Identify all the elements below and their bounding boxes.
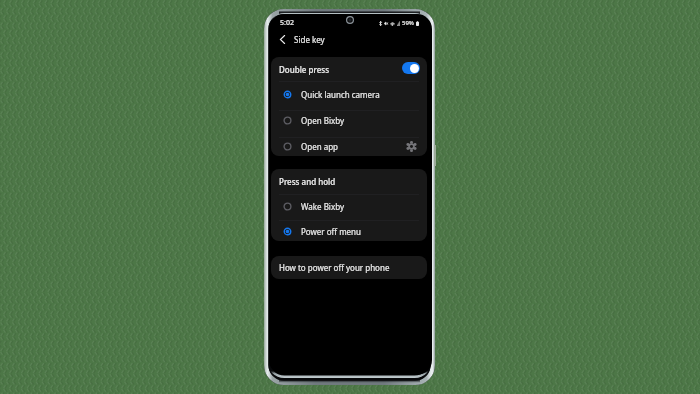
staticText: Press and hold bbox=[279, 176, 336, 187]
button[interactable]: Open Bixby bbox=[271, 107, 427, 133]
button[interactable]: Open app settings bbox=[404, 139, 418, 153]
button[interactable]: Double press bbox=[279, 64, 330, 75]
button[interactable]: Open app bbox=[271, 133, 427, 156]
button[interactable]: How to power off your phone bbox=[271, 256, 427, 279]
button[interactable]: Quick launch camera bbox=[271, 81, 427, 107]
staticText: 59% bbox=[402, 19, 414, 27]
button[interactable]: Power off menu bbox=[271, 218, 427, 241]
staticText: How to power off your phone bbox=[279, 262, 390, 273]
staticText: Side key bbox=[294, 34, 325, 45]
staticText: 5:02 bbox=[280, 18, 294, 28]
button[interactable]: Wake Bixby bbox=[271, 193, 427, 219]
button[interactable]: Back bbox=[275, 32, 289, 46]
staticText: Open Bixby bbox=[301, 115, 345, 126]
staticText: Quick launch camera bbox=[301, 89, 380, 100]
staticText: Open app bbox=[301, 141, 339, 152]
button[interactable]: Double press toggle bbox=[402, 62, 420, 74]
staticText: Power off menu bbox=[301, 226, 362, 237]
staticText: Wake Bixby bbox=[301, 201, 344, 212]
